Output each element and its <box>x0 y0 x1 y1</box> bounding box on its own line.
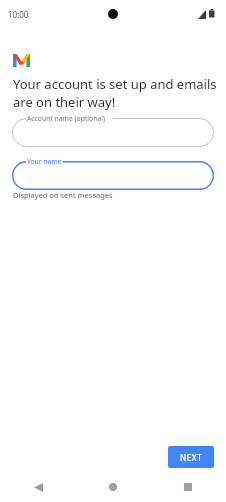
button[interactable]: Back <box>21 472 55 502</box>
staticText: Your name <box>27 157 62 166</box>
staticText: Account name (optional) <box>27 114 106 123</box>
staticText: 10:00 <box>8 9 29 20</box>
button[interactable]: Recent apps <box>171 472 205 502</box>
button[interactable]: NEXT <box>168 446 214 468</box>
staticText: Your account is set up and emails <box>13 75 217 93</box>
button[interactable]: Your name <box>12 161 214 190</box>
staticText: NEXT <box>180 452 203 463</box>
staticText: Displayed on sent messages <box>13 190 113 200</box>
staticText: are on their way! <box>13 93 116 111</box>
button[interactable]: Home <box>96 472 130 502</box>
button[interactable]: Account name (optional) <box>12 118 214 147</box>
